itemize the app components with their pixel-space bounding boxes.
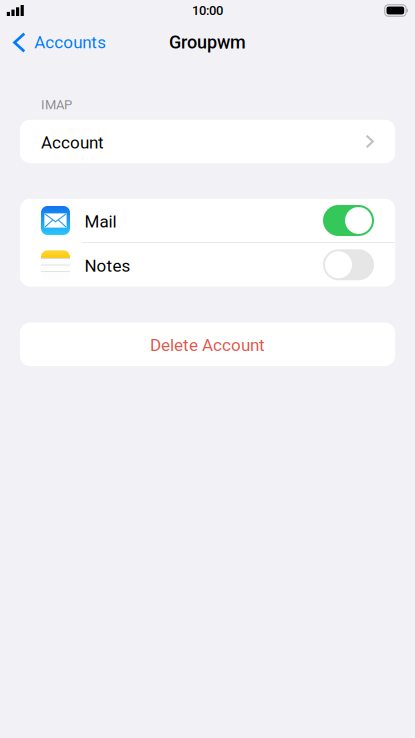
button[interactable]: Mail <box>323 205 374 236</box>
staticText: Account <box>41 133 104 153</box>
staticText: Delete Account <box>150 335 265 355</box>
staticText: Groupwm <box>169 32 246 53</box>
staticText: Accounts <box>34 32 106 52</box>
staticText: Notes <box>84 256 130 276</box>
button[interactable]: Account <box>20 120 395 163</box>
staticText: Mail <box>84 212 116 232</box>
staticText: 10:00 <box>192 3 223 18</box>
staticText: IMAP <box>41 97 72 112</box>
button[interactable]: Delete Account <box>20 322 395 366</box>
button[interactable]: Accounts <box>0 21 116 55</box>
button[interactable]: Notes <box>323 249 374 280</box>
